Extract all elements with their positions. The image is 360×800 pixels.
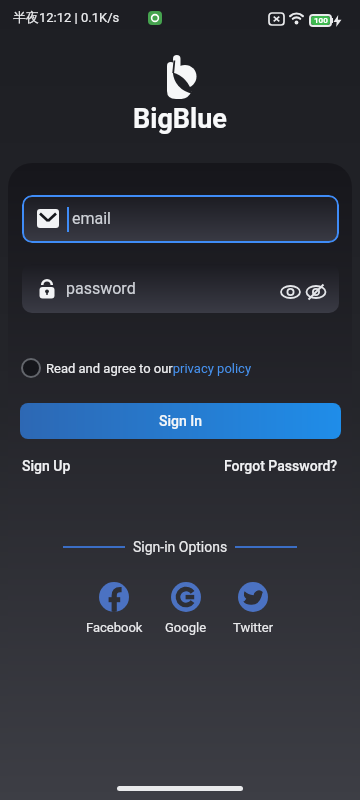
staticText: email xyxy=(72,209,111,228)
button[interactable]: Twitter xyxy=(218,582,288,635)
staticText: Facebook xyxy=(86,620,143,635)
button[interactable]: Sign In xyxy=(20,403,341,439)
button[interactable] xyxy=(22,264,339,313)
button[interactable]: Sign Up xyxy=(22,458,71,474)
staticText: Twitter xyxy=(233,620,274,635)
staticText: Google xyxy=(165,620,207,635)
staticText: 100 xyxy=(314,16,328,25)
button[interactable]: Forgot Password? xyxy=(224,458,338,474)
button[interactable] xyxy=(22,195,339,243)
staticText: password xyxy=(66,279,136,298)
staticText: Sign In xyxy=(159,413,202,429)
button[interactable] xyxy=(21,358,41,378)
staticText: Sign-in Options xyxy=(133,539,228,555)
staticText: BigBlue xyxy=(133,103,227,135)
button[interactable]: Google xyxy=(151,582,221,635)
button[interactable] xyxy=(280,285,301,299)
button[interactable] xyxy=(305,283,327,301)
staticText: 半夜12:12 | 0.1K/s xyxy=(13,9,120,25)
button[interactable]: Facebook xyxy=(79,582,149,635)
button[interactable]: Read and agree to ourprivacy policy xyxy=(46,361,252,376)
